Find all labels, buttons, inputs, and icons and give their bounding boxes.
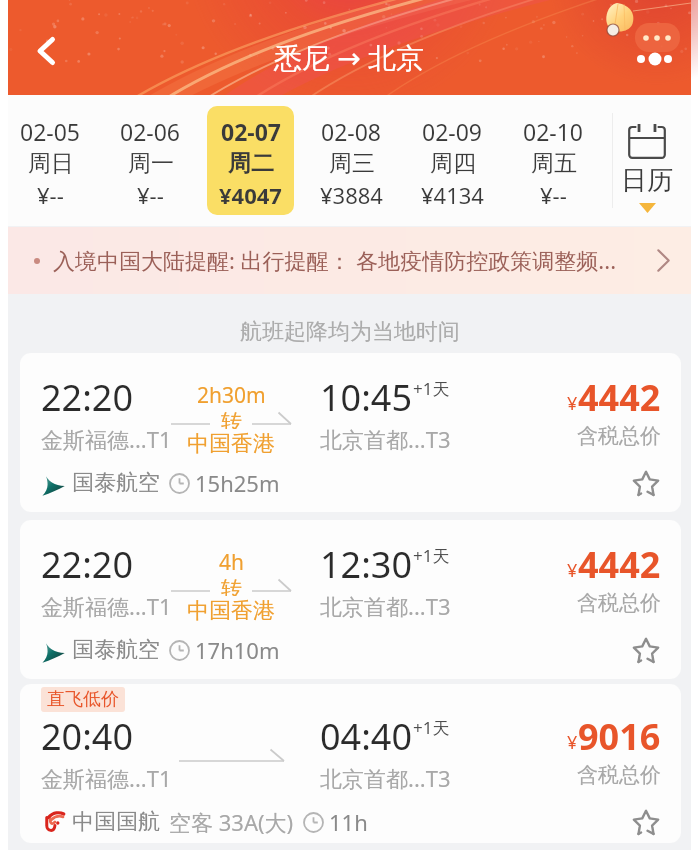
button[interactable]: Calendar [613,95,691,226]
staticText: 02-09 [422,116,483,147]
button[interactable]: 22:20 [20,353,681,512]
staticText: 金斯福德...T1 [41,591,172,621]
staticText: 北京首都...T3 [320,424,451,454]
staticText: ¥ [567,391,578,416]
staticText: 9016 [578,712,661,761]
staticText: 4442 [578,540,661,589]
staticText: 12:30 [320,540,413,589]
staticText: ¥4134 [421,180,484,210]
staticText: 空客 33A(大) [169,807,294,837]
button[interactable]: 02-07 [207,106,294,215]
staticText: ¥-- [37,180,64,210]
staticText: +1天 [413,377,450,400]
staticText: 含税总价 [577,590,661,616]
staticText: 02-08 [321,116,382,147]
staticText: 中国香港 [187,430,275,458]
button[interactable]: 02-10 [510,106,597,215]
staticText: 周五 [531,149,577,178]
staticText: 航班起降均为当地时间 [240,318,460,346]
staticText: 直飞低价 [47,688,119,711]
staticText: 4442 [578,373,661,422]
staticText: 周四 [430,149,476,178]
button[interactable]: 02-09 [409,106,496,215]
staticText: 11h [329,807,368,837]
button[interactable]: Add to favorites [628,804,664,840]
staticText: 入境中国大陆提醒: 出行提醒： 各地疫情防控政策调整频... [53,245,649,275]
staticText: 转 [221,576,242,596]
staticText: 中国国航 [72,808,160,836]
staticText: 02-07 [221,116,281,147]
staticText: 02-10 [523,116,584,147]
staticText: ¥3884 [320,180,383,210]
button[interactable]: 02-08 [308,106,395,215]
button[interactable]: Add to favorites [628,465,664,501]
button[interactable]: More options [627,14,689,72]
staticText: 15h25m [195,468,280,498]
staticText: 含税总价 [577,423,661,449]
staticText: 17h10m [195,635,280,665]
staticText: 周二 [228,149,274,178]
button[interactable]: 直飞低价 [20,684,681,843]
staticText: 国泰航空 [72,469,160,497]
button[interactable]: 入境中国大陆提醒: 出行提醒： 各地疫情防控政策调整频... [8,227,691,294]
staticText: 22:20 [41,540,134,589]
staticText: ¥ [567,558,578,583]
staticText: 周一 [128,149,174,178]
staticText: 10:45 [320,373,413,422]
staticText: 04:40 [320,712,413,761]
staticText: +1天 [413,544,450,567]
staticText: 国泰航空 [72,636,160,664]
staticText: 20:40 [41,712,134,761]
staticText: 02-05 [20,116,81,147]
staticText: 4h [219,548,244,577]
staticText: ¥4047 [219,180,282,210]
staticText: ¥-- [137,180,164,210]
staticText: 金斯福德...T1 [41,763,172,793]
button[interactable]: Back [22,27,70,75]
staticText: 2h30m [197,381,266,410]
staticText: 日历 [621,164,673,197]
button[interactable]: 02-06 [107,106,193,215]
staticText: 北京首都...T3 [320,763,451,793]
button[interactable]: Add to favorites [628,632,664,668]
staticText: ¥ [567,730,578,755]
staticText: 悉尼 → 北京 [274,38,425,76]
staticText: 北京首都...T3 [320,591,451,621]
staticText: 02-06 [120,116,181,147]
staticText: 22:20 [41,373,134,422]
staticText: 周三 [329,149,375,178]
staticText: 中国香港 [187,597,275,625]
staticText: ¥-- [540,180,567,210]
staticText: 转 [221,409,242,429]
button[interactable]: 02-05 [7,106,93,215]
staticText: 周日 [28,149,74,178]
staticText: 金斯福德...T1 [41,424,172,454]
staticText: +1天 [413,716,450,739]
staticText: 含税总价 [577,762,661,788]
button[interactable]: 22:20 [20,520,681,679]
